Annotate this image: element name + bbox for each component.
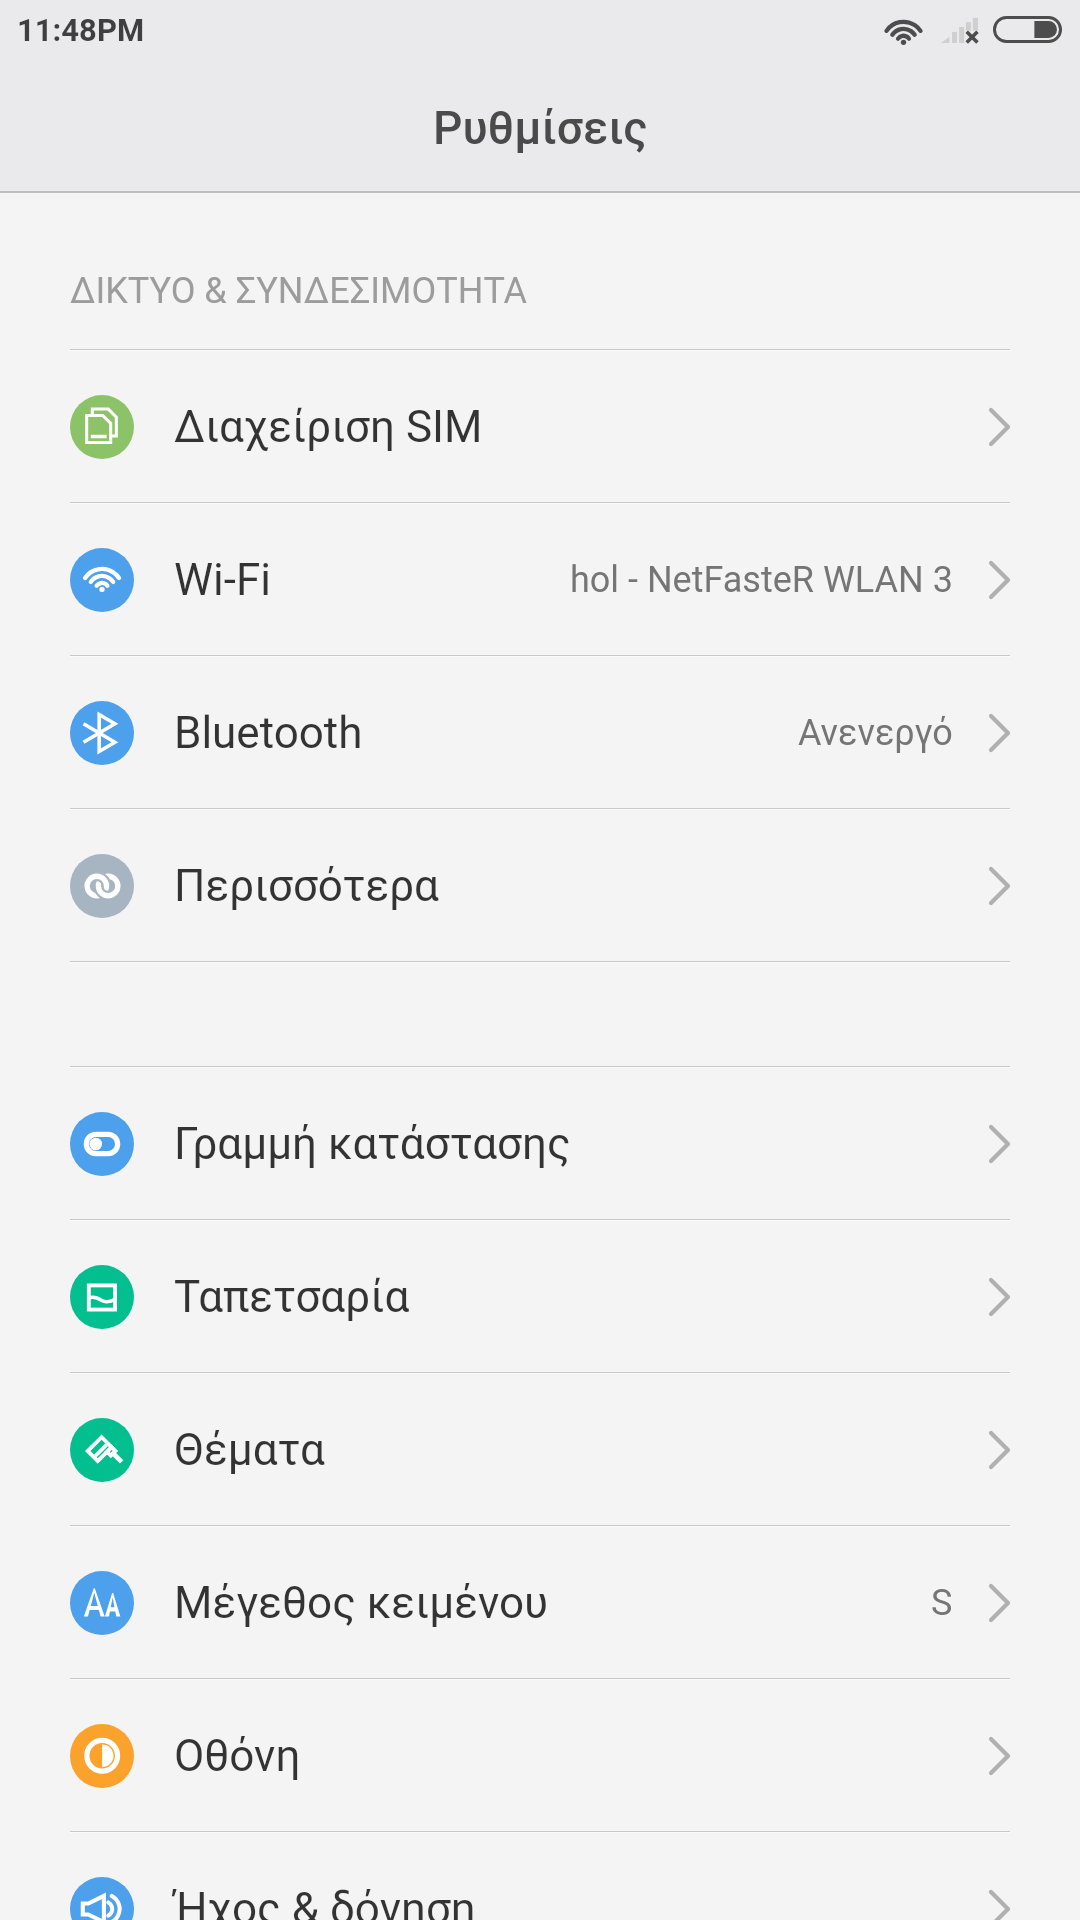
staticText: Περισσότερα	[174, 860, 439, 912]
button[interactable]: Περισσότερα	[0, 810, 1080, 961]
button[interactable]: Διαχείριση SIM	[0, 351, 1080, 502]
staticText: hol - NetFasteR WLAN 3	[570, 559, 953, 601]
button[interactable]: Μέγεθος κειμένου	[0, 1527, 1080, 1678]
button[interactable]: Θέματα	[0, 1374, 1080, 1525]
staticText: Ρυθμίσεις	[433, 101, 648, 155]
staticText: Θέματα	[174, 1424, 325, 1476]
other: Wi-Fi status	[884, 15, 923, 43]
other: Mobile signal	[941, 15, 978, 43]
button[interactable]: Ταπετσαρία	[0, 1221, 1080, 1372]
staticText: Wi-Fi	[174, 554, 271, 606]
button[interactable]: Ήχος & δόνηση	[0, 1833, 1080, 1920]
staticText: ΔΙΚΤΥΟ & ΣΥΝΔΕΣΙΜΟΤΗΤΑ	[70, 270, 527, 312]
staticText: 11:48PM	[17, 12, 145, 48]
staticText: Bluetooth	[174, 707, 363, 759]
staticText: Ανενεργό	[798, 712, 953, 754]
button[interactable]: Γραμμή κατάστασης	[0, 1068, 1080, 1219]
staticText: Γραμμή κατάστασης	[174, 1118, 571, 1170]
button[interactable]: Bluetooth	[0, 657, 1080, 808]
staticText: Διαχείριση SIM	[174, 401, 483, 453]
staticText: Μέγεθος κειμένου	[174, 1577, 548, 1629]
staticText: S	[931, 1582, 953, 1624]
staticText: Ήχος & δόνηση	[174, 1883, 476, 1920]
other: Battery	[993, 16, 1062, 43]
staticText: Οθόνη	[174, 1730, 301, 1782]
button[interactable]: Οθόνη	[0, 1680, 1080, 1831]
button[interactable]: Wi-Fi	[0, 504, 1080, 655]
staticText: Ταπετσαρία	[174, 1271, 410, 1323]
